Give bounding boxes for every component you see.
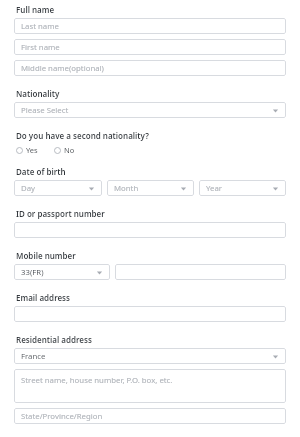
button[interactable]: Country code xyxy=(14,264,110,280)
staticText: Month xyxy=(114,183,139,194)
staticText: 33(FR) xyxy=(21,267,44,278)
button[interactable]: Middle name xyxy=(14,60,286,76)
staticText: State/Province/Region xyxy=(21,411,103,422)
staticText: Do you have a second nationality? xyxy=(16,130,149,141)
button[interactable]: State Province Region xyxy=(14,408,286,424)
staticText: France xyxy=(21,351,46,362)
staticText: Nationality xyxy=(16,88,60,99)
staticText: Middle name(optional) xyxy=(21,63,104,74)
button[interactable]: Day xyxy=(14,180,102,196)
staticText: ID or passport number xyxy=(16,208,105,219)
staticText: First name xyxy=(21,42,60,53)
button[interactable]: Country xyxy=(14,348,286,364)
staticText: Mobile number xyxy=(16,250,76,261)
staticText: Last name xyxy=(21,21,59,32)
button[interactable]: Yes xyxy=(15,144,39,156)
button[interactable]: Street address xyxy=(14,369,286,403)
button[interactable]: Email address xyxy=(14,306,286,322)
staticText: Please Select xyxy=(21,105,69,116)
button[interactable]: No xyxy=(53,144,76,156)
button[interactable]: Month xyxy=(107,180,194,196)
button[interactable]: Nationality xyxy=(14,102,286,118)
button[interactable]: ID or passport number xyxy=(14,222,286,238)
staticText: No xyxy=(64,145,75,155)
staticText: Email address xyxy=(16,292,71,303)
staticText: Day xyxy=(21,183,36,194)
staticText: Yes xyxy=(26,145,38,155)
button[interactable]: Year xyxy=(199,180,286,196)
staticText: Year xyxy=(206,183,223,194)
staticText: Street name, house number, P.O. box, etc… xyxy=(21,375,173,386)
button[interactable]: First name xyxy=(14,39,286,55)
button[interactable]: Mobile number xyxy=(115,264,286,280)
staticText: Date of birth xyxy=(16,166,66,177)
staticText: Residential address xyxy=(16,334,92,345)
button[interactable]: Last name xyxy=(14,18,286,34)
staticText: Full name xyxy=(16,4,55,15)
